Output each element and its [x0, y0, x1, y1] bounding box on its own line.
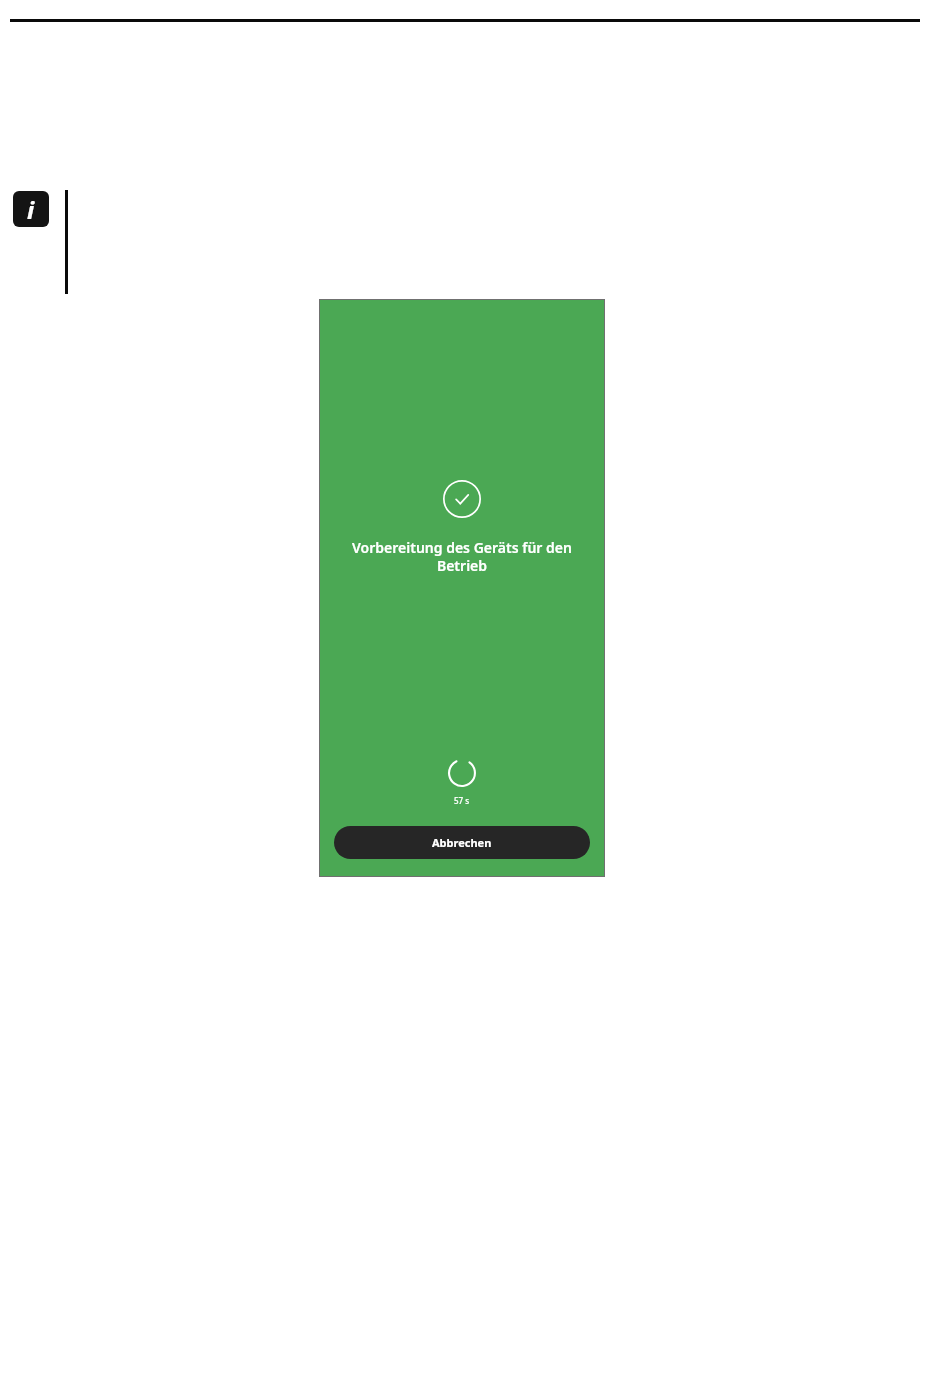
button[interactable]: Abbrechen: [334, 826, 590, 859]
button[interactable]: Information note: [13, 191, 49, 227]
staticText: Vorbereitung des Geräts für den Betrieb: [334, 538, 590, 575]
staticText: 57 s: [454, 795, 470, 806]
staticText: i: [27, 193, 35, 226]
staticText: Abbrechen: [432, 835, 492, 850]
